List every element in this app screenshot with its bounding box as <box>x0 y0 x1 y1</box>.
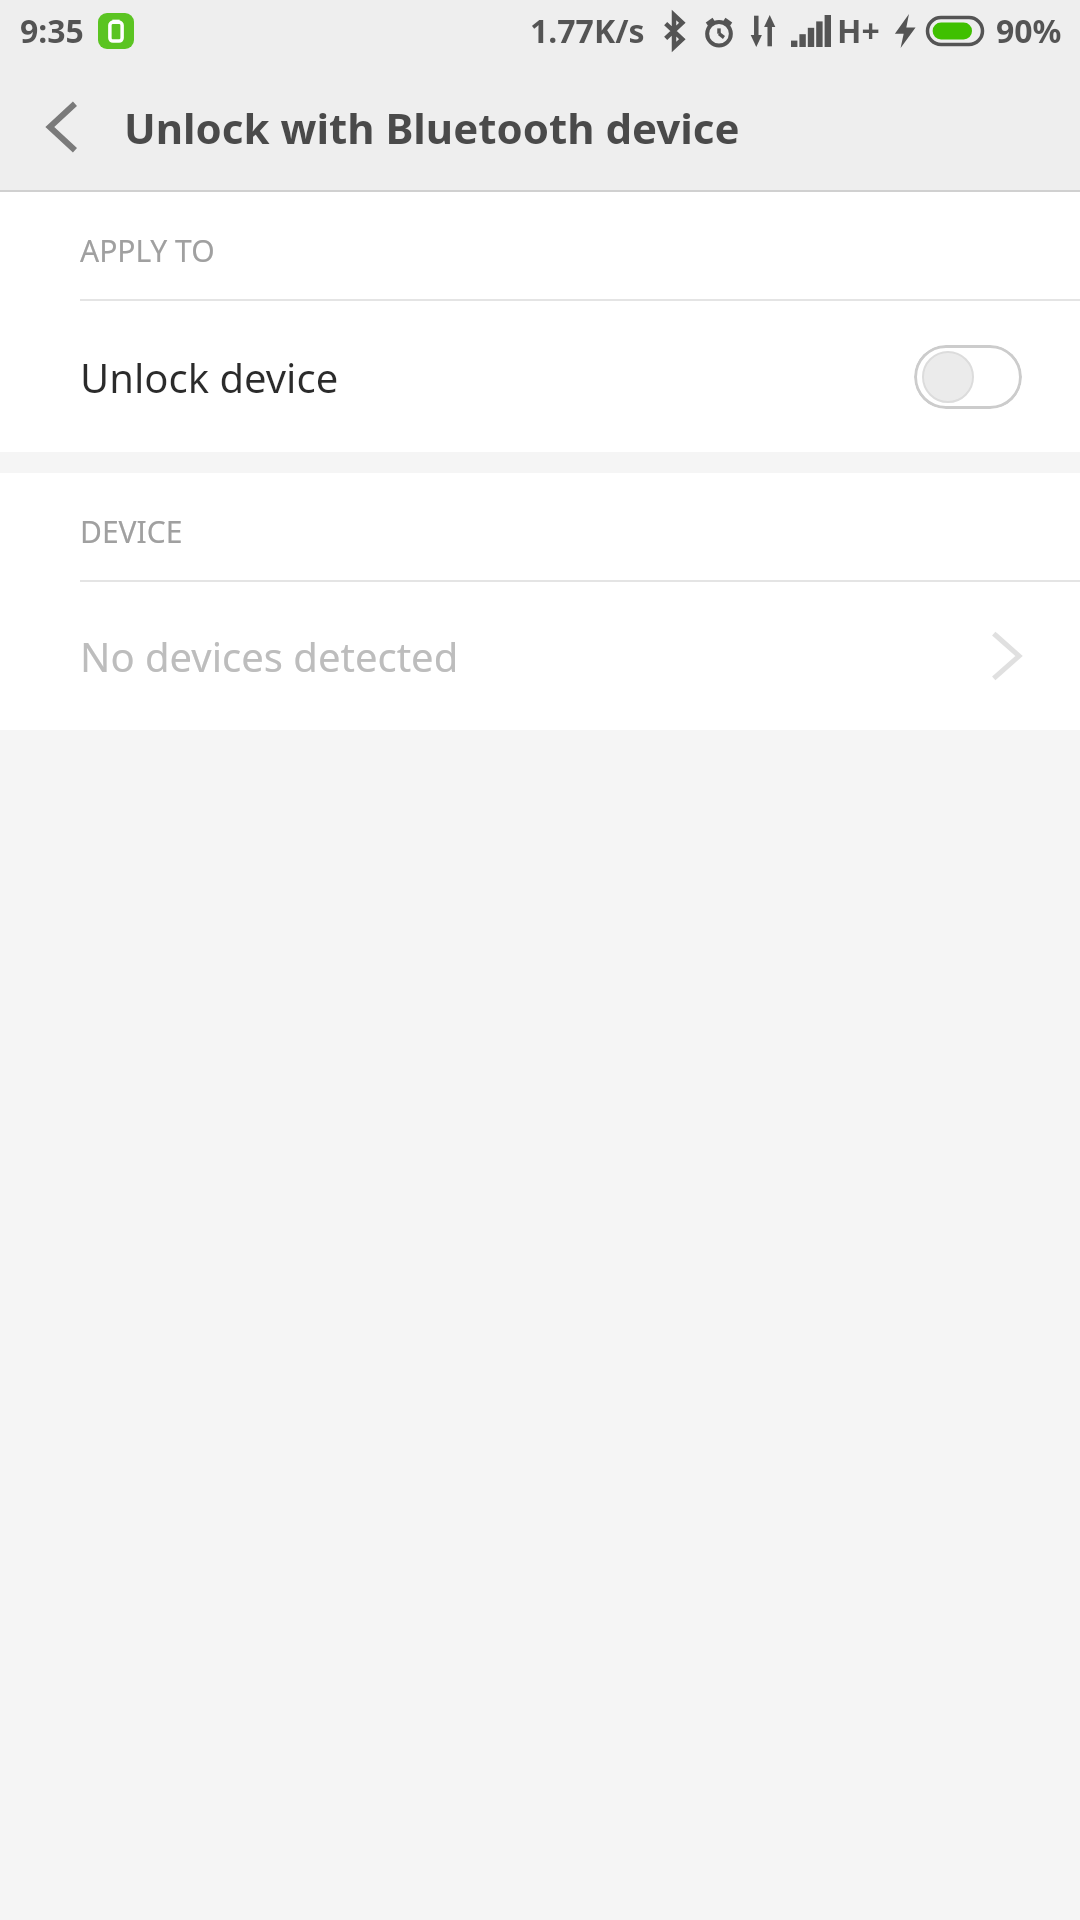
staticText: APPLY TO <box>80 230 215 271</box>
staticText: Unlock with Bluetooth device <box>124 99 740 156</box>
staticText: H+ <box>837 9 880 53</box>
button[interactable]: Unlock device <box>0 301 1080 452</box>
staticText: 1.77K/s <box>530 9 645 53</box>
staticText: 9:35 <box>20 9 84 53</box>
staticText: No devices detected <box>80 629 459 683</box>
button[interactable]: Back <box>18 84 104 170</box>
staticText: 90% <box>996 9 1062 53</box>
staticText: Unlock device <box>80 350 339 404</box>
button[interactable]: Unlock device toggle, off <box>914 345 1022 409</box>
staticText: DEVICE <box>80 511 183 552</box>
button[interactable]: No devices detected <box>0 582 1080 730</box>
